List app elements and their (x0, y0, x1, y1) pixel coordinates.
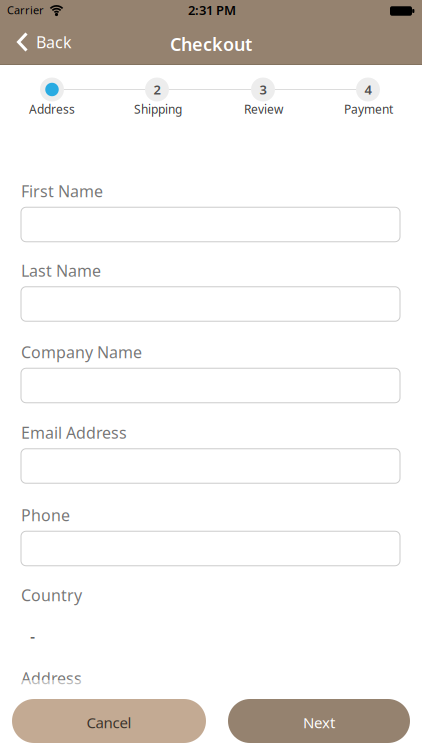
button[interactable]: First Name (21, 207, 400, 242)
staticText: Carrier (7, 2, 44, 17)
button[interactable]: Phone (21, 531, 400, 566)
staticText: 3 (259, 81, 266, 98)
staticText: Company Name (21, 341, 142, 363)
staticText: Payment (344, 101, 393, 117)
staticText: Country (21, 584, 82, 606)
button[interactable]: Company Name (21, 368, 400, 403)
staticText: - (30, 625, 35, 647)
button[interactable]: Cancel (12, 699, 206, 743)
staticText: Review (244, 101, 283, 117)
button[interactable]: Next (228, 699, 410, 743)
staticText: Cancel (86, 712, 131, 733)
staticText: Back (36, 31, 72, 53)
staticText: 2 (153, 81, 160, 98)
staticText: First Name (21, 180, 103, 202)
staticText: Address (21, 667, 82, 689)
staticText: Phone (21, 504, 70, 526)
button[interactable]: Last Name (21, 287, 400, 321)
staticText: 2:31 PM (188, 1, 236, 19)
staticText: Email Address (21, 422, 127, 443)
button[interactable]: Country (21, 626, 410, 646)
button[interactable]: Email Address (21, 449, 400, 483)
staticText: 4 (364, 81, 371, 98)
staticText: Next (303, 712, 335, 733)
staticText: Last Name (21, 260, 101, 281)
staticText: Shipping (134, 101, 182, 117)
staticText: Checkout (170, 32, 252, 56)
button[interactable]: Back (17, 20, 72, 64)
staticText: Address (29, 101, 75, 117)
